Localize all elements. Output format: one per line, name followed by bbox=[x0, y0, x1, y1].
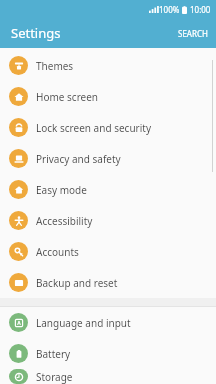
staticText: Themes bbox=[36, 59, 74, 73]
staticText: Backup and reset bbox=[36, 276, 118, 290]
staticText: Lock screen and security bbox=[36, 121, 151, 135]
staticText: 100% bbox=[159, 4, 180, 15]
button[interactable]: Backup and reset bbox=[0, 267, 216, 298]
button[interactable]: Accounts bbox=[0, 236, 216, 267]
staticText: Storage bbox=[36, 370, 73, 384]
staticText: SEARCH bbox=[178, 28, 208, 39]
button[interactable]: Themes bbox=[0, 50, 216, 81]
staticText: Accessibility bbox=[36, 214, 93, 228]
staticText: Privacy and safety bbox=[36, 152, 121, 166]
staticText: Language and input bbox=[36, 316, 131, 330]
button[interactable]: Accessibility bbox=[0, 205, 216, 236]
staticText: Battery bbox=[36, 347, 71, 361]
button[interactable]: Easy mode bbox=[0, 174, 216, 205]
button[interactable]: SEARCH bbox=[170, 22, 216, 45]
button[interactable]: Battery bbox=[0, 338, 216, 369]
staticText: Easy mode bbox=[36, 183, 87, 197]
staticText: Home screen bbox=[36, 90, 99, 104]
button[interactable]: Home screen bbox=[0, 81, 216, 112]
button[interactable]: Privacy and safety bbox=[0, 143, 216, 174]
staticText: Accounts bbox=[36, 245, 79, 259]
button[interactable]: Lock screen and security bbox=[0, 112, 216, 143]
button[interactable]: Language and input bbox=[0, 307, 216, 338]
staticText: Settings bbox=[11, 24, 61, 42]
staticText: 10:00 bbox=[190, 4, 211, 15]
button[interactable]: Storage bbox=[0, 369, 216, 384]
